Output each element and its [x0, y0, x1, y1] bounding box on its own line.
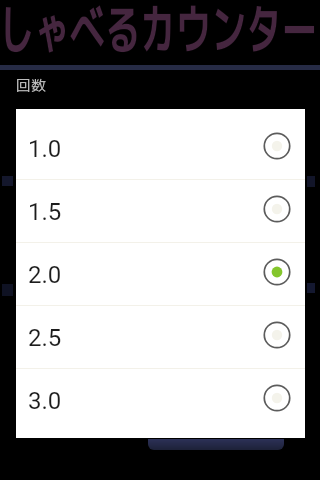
staticText: 2.0	[28, 261, 62, 289]
button[interactable]: 2.0	[16, 243, 305, 306]
button[interactable]: 2.5	[16, 306, 305, 369]
staticText: 3.0	[28, 387, 62, 415]
staticText: 1.5	[28, 198, 62, 226]
staticText: 回数	[16, 75, 47, 96]
button[interactable]: 1.0	[16, 117, 305, 180]
staticText: しゃべるカウンター	[0, 0, 317, 53]
staticText: 1.0	[28, 135, 62, 163]
button[interactable]: 3.0	[16, 369, 305, 432]
button[interactable]: 1.5	[16, 180, 305, 243]
staticText: 2.5	[28, 324, 62, 352]
